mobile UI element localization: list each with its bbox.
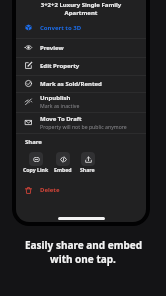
button[interactable]: Share bbox=[81, 152, 95, 166]
button[interactable]: Edit Property bbox=[16, 57, 146, 74]
button[interactable]: Delete bbox=[16, 183, 146, 197]
staticText: Mark as inactive bbox=[40, 102, 80, 109]
staticText: with one tap. bbox=[50, 252, 116, 266]
staticText: Share bbox=[80, 166, 95, 173]
staticText: Easily share and embed bbox=[25, 238, 142, 252]
staticText: Edit Property bbox=[40, 62, 80, 70]
button[interactable]: Unpublish bbox=[16, 93, 146, 110]
staticText: Move To Draft bbox=[40, 115, 82, 123]
staticText: Property will not be public anymore bbox=[40, 123, 127, 130]
staticText: Convert to 3D bbox=[40, 24, 82, 32]
button[interactable]: Copy Link bbox=[29, 152, 43, 166]
button[interactable]: Mark as Sold/Rented bbox=[16, 75, 146, 92]
staticText: Preview bbox=[40, 44, 64, 52]
staticText: Share bbox=[25, 138, 42, 146]
button[interactable]: Convert to 3D bbox=[16, 19, 146, 36]
staticText: Copy Link bbox=[23, 166, 49, 173]
button[interactable]: Move To Draft bbox=[16, 114, 146, 131]
button[interactable]: Preview bbox=[16, 39, 146, 56]
staticText: Mark as Sold/Rented bbox=[40, 80, 102, 88]
staticText: Delete bbox=[40, 186, 60, 194]
staticText: 3+2+2 Luxury Single Family Apartment bbox=[22, 1, 140, 17]
staticText: Unpublish bbox=[40, 94, 71, 102]
button[interactable]: Embed bbox=[56, 152, 70, 166]
staticText: Embed bbox=[54, 166, 72, 173]
